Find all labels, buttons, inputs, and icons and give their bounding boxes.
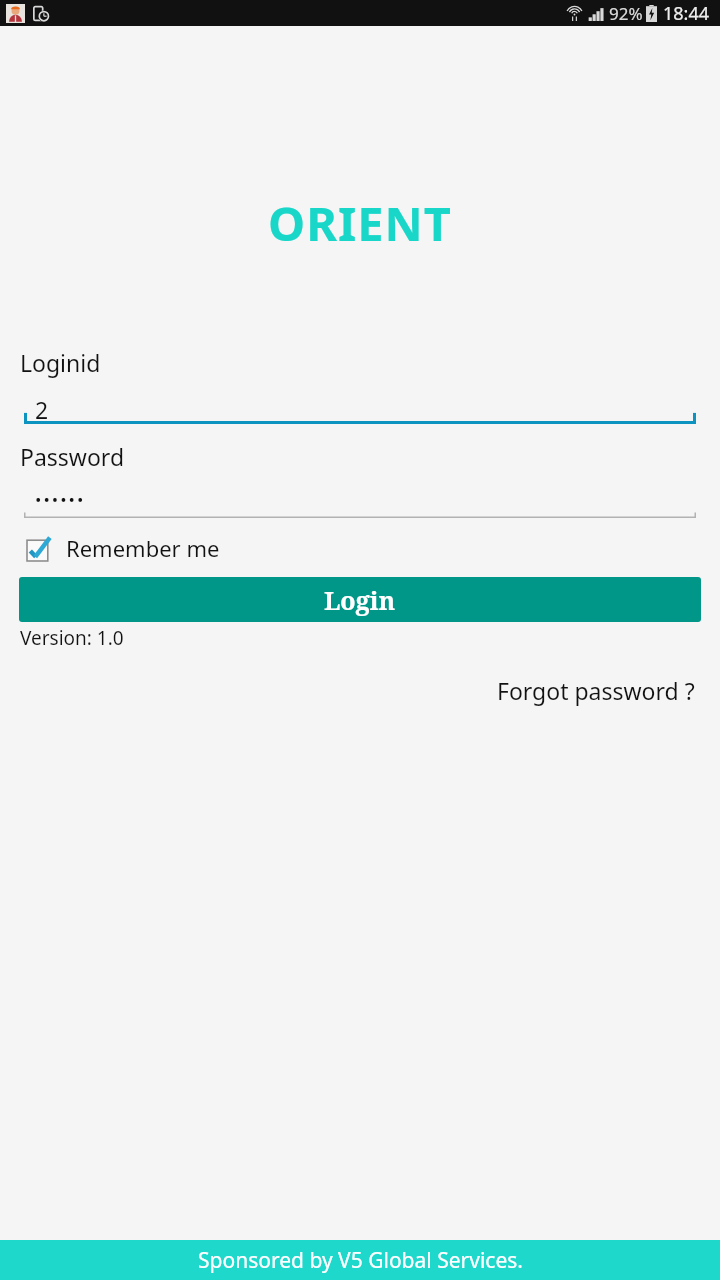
staticText: Loginid: [20, 347, 101, 378]
button[interactable]: ••••••: [24, 488, 696, 518]
staticText: Sponsored by V5 Global Services.: [198, 1246, 523, 1275]
button[interactable]: Login: [19, 577, 701, 622]
staticText: 2: [35, 394, 49, 424]
staticText: ••••••: [35, 488, 86, 511]
staticText: Login: [324, 583, 396, 617]
button[interactable]: Remember me checkbox: [27, 533, 220, 563]
button[interactable]: 2: [24, 394, 696, 424]
staticText: Password: [20, 441, 125, 472]
other: Remember me checkbox: [27, 535, 53, 561]
staticText: 92%: [609, 2, 643, 25]
staticText: Remember me: [66, 533, 220, 563]
staticText: 18:44: [663, 1, 710, 26]
staticText: Version: 1.0: [20, 625, 124, 651]
staticText: ORIENT: [268, 191, 452, 255]
button[interactable]: Forgot password ?: [497, 675, 695, 706]
